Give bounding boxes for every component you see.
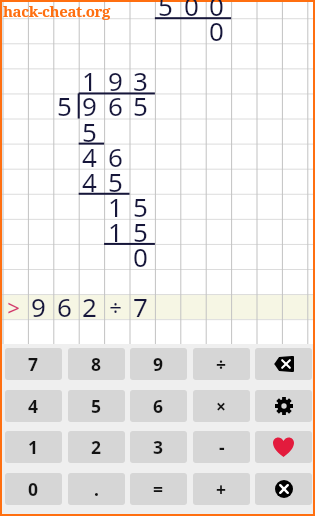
staticText: 0 xyxy=(28,477,39,501)
button[interactable]: ÷ xyxy=(193,348,250,380)
staticText: + xyxy=(216,477,227,501)
staticText: 5 xyxy=(82,114,97,149)
button[interactable]: 5 xyxy=(68,390,125,422)
staticText: 4 xyxy=(28,394,39,418)
staticText: 4 xyxy=(82,139,97,174)
staticText: 5 xyxy=(133,88,148,123)
staticText: 0 xyxy=(184,0,199,23)
staticText: 0 xyxy=(209,0,224,23)
button[interactable]: 4 xyxy=(5,390,62,422)
staticText: - xyxy=(219,435,225,459)
button[interactable]: Clear xyxy=(255,473,312,505)
staticText: 1 xyxy=(82,63,97,98)
staticText: 9 xyxy=(82,88,97,123)
staticText: 2 xyxy=(91,435,102,459)
staticText: 0 xyxy=(133,239,148,274)
button[interactable]: 7 xyxy=(5,348,62,380)
staticText: 9 xyxy=(31,289,46,324)
staticText: 5 xyxy=(91,394,102,418)
button[interactable]: 9 xyxy=(130,348,187,380)
staticText: 6 xyxy=(108,88,123,123)
staticText: 6 xyxy=(108,139,123,174)
button[interactable]: Settings xyxy=(255,390,312,422)
staticText: 5 xyxy=(158,0,173,23)
staticText: 9 xyxy=(153,352,164,376)
staticText: 5 xyxy=(133,214,148,249)
button[interactable]: Backspace xyxy=(255,348,312,380)
button[interactable]: = xyxy=(130,473,187,505)
button[interactable]: 1 xyxy=(5,431,62,463)
staticText: ÷ xyxy=(216,352,227,376)
staticText: 0 xyxy=(209,13,224,48)
button[interactable]: Favorite xyxy=(255,431,312,463)
button[interactable]: × xyxy=(193,390,250,422)
staticText: 1 xyxy=(28,435,39,459)
staticText: 6 xyxy=(57,289,72,324)
staticText: 9 xyxy=(108,63,123,98)
staticText: 2 xyxy=(82,289,97,324)
staticText: 8 xyxy=(91,352,102,376)
staticText: . xyxy=(94,477,99,501)
staticText: 5 xyxy=(133,189,148,224)
staticText: 1 xyxy=(108,189,123,224)
staticText: 5 xyxy=(57,88,72,123)
button[interactable]: . xyxy=(68,473,125,505)
button[interactable]: 2 xyxy=(68,431,125,463)
button[interactable]: - xyxy=(193,431,250,463)
staticText: 1 xyxy=(108,214,123,249)
staticText: = xyxy=(153,477,164,501)
staticText: ÷ xyxy=(109,292,122,322)
staticText: 3 xyxy=(133,63,148,98)
staticText: 5 xyxy=(108,164,123,199)
staticText: hack-cheat.org xyxy=(3,1,110,21)
staticText: > xyxy=(7,292,20,322)
button[interactable]: 6 xyxy=(130,390,187,422)
staticText: 3 xyxy=(153,435,164,459)
staticText: 7 xyxy=(133,289,148,324)
staticText: 6 xyxy=(153,394,164,418)
staticText: 7 xyxy=(28,352,39,376)
staticText: × xyxy=(216,394,227,418)
button[interactable]: + xyxy=(193,473,250,505)
button[interactable]: 0 xyxy=(5,473,62,505)
button[interactable]: 3 xyxy=(130,431,187,463)
staticText: 4 xyxy=(82,164,97,199)
button[interactable]: 8 xyxy=(68,348,125,380)
